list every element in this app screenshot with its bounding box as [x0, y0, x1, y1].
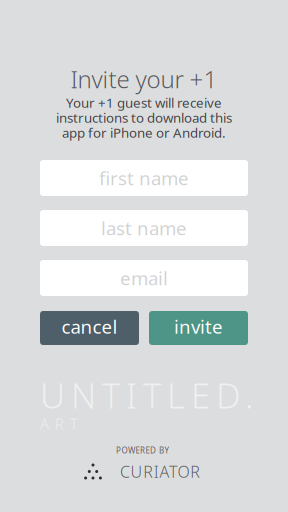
staticText: UNTITLED.: [40, 372, 253, 418]
staticText: POWERED BY: [116, 445, 172, 456]
staticText: CURIATOR: [120, 461, 205, 482]
staticText: last name: [101, 216, 187, 240]
button[interactable]: email: [40, 260, 248, 296]
staticText: first name: [99, 166, 189, 190]
button[interactable]: last name: [40, 210, 248, 246]
button[interactable]: invite: [149, 311, 248, 345]
staticText: invite: [174, 314, 223, 339]
staticText: ART: [40, 414, 78, 433]
staticText: cancel: [61, 314, 117, 339]
staticText: instructions to download this: [56, 109, 232, 126]
staticText: email: [120, 266, 168, 290]
button[interactable]: first name: [40, 160, 248, 196]
staticText: Your +1 guest will receive: [66, 94, 222, 111]
button[interactable]: cancel: [40, 311, 139, 345]
staticText: app for iPhone or Android.: [62, 124, 226, 141]
staticText: Invite your +1: [70, 63, 217, 95]
